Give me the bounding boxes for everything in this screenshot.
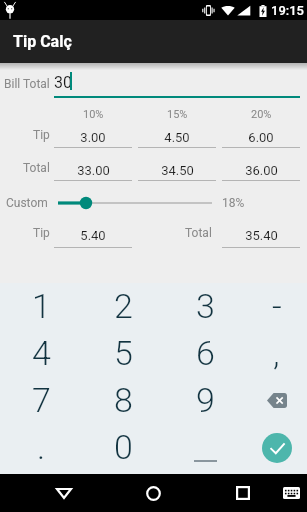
staticText: Tip [33, 226, 50, 240]
staticText: 34.50 [161, 163, 194, 178]
staticText: 9 [196, 380, 215, 420]
button[interactable]: , [246, 330, 307, 377]
button[interactable]: Confirm [246, 424, 307, 471]
staticText: . [37, 427, 46, 467]
button[interactable]: 3 [164, 283, 246, 330]
button[interactable]: 2 [82, 283, 164, 330]
staticText: Custom [6, 196, 48, 210]
staticText: 2 [114, 286, 133, 326]
staticText: 7 [32, 380, 51, 420]
staticText: 4 [32, 333, 51, 373]
other: Confirm [262, 433, 292, 463]
button[interactable]: Tip Calç [0, 20, 307, 63]
staticText: 3 [196, 286, 215, 326]
staticText: Bill Total [4, 77, 50, 91]
button[interactable]: 0 [82, 424, 164, 471]
staticText: 19:15 [271, 3, 304, 18]
button[interactable]: 4 [0, 330, 82, 377]
staticText: , [273, 333, 280, 373]
button[interactable]: 1 [0, 283, 82, 330]
staticText: Total [185, 226, 212, 240]
staticText: 30 [54, 73, 72, 92]
button[interactable]: 7 [0, 377, 82, 424]
staticText: - [272, 286, 282, 326]
button[interactable]: Show keyboard [275, 474, 307, 512]
button[interactable]: 6 [164, 330, 246, 377]
staticText: 18% [222, 196, 245, 210]
button[interactable]: Back [46, 474, 82, 512]
button[interactable]: Home [135, 474, 171, 512]
button[interactable]: Backspace [246, 377, 307, 424]
staticText: Tip Calç [13, 32, 72, 51]
button[interactable]: Recents [225, 474, 261, 512]
staticText: 3.00 [80, 130, 106, 145]
staticText: 1 [32, 286, 51, 326]
staticText: 15% [167, 108, 188, 121]
staticText: Total [23, 161, 50, 175]
button[interactable]: 8 [82, 377, 164, 424]
staticText: 20% [251, 108, 272, 121]
staticText: 5.40 [80, 228, 106, 243]
staticText: 4.50 [164, 130, 190, 145]
button[interactable]: . [0, 424, 82, 471]
staticText: 10% [83, 108, 104, 121]
staticText: Tip [33, 128, 50, 142]
staticText: 5 [114, 333, 133, 373]
button[interactable] [164, 424, 246, 471]
button[interactable]: - [246, 283, 307, 330]
staticText: 36.00 [245, 163, 278, 178]
button[interactable]: 9 [164, 377, 246, 424]
button[interactable]: 5 [82, 330, 164, 377]
other: Backspace [246, 377, 307, 424]
staticText: 35.40 [245, 228, 278, 243]
staticText: 6.00 [248, 130, 274, 145]
staticText: 6 [196, 333, 215, 373]
staticText: 0 [114, 427, 133, 467]
staticText: 8 [114, 380, 133, 420]
button[interactable] [54, 192, 216, 214]
staticText: 33.00 [77, 163, 110, 178]
